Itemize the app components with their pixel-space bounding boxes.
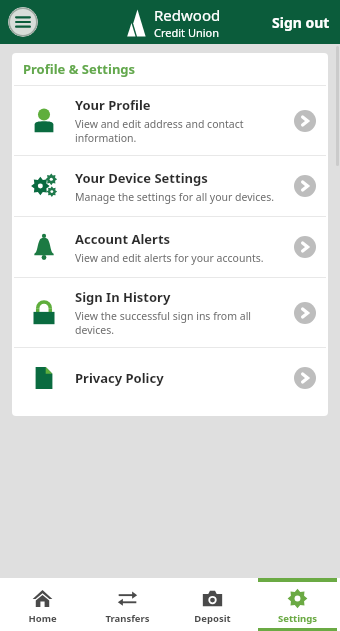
- button[interactable]: Sign In History: [12, 278, 328, 347]
- staticText: View and edit address and contact inform…: [75, 117, 284, 145]
- button[interactable]: Deposit: [170, 578, 255, 631]
- button[interactable]: Transfers: [85, 578, 170, 631]
- staticText: Profile & Settings: [23, 60, 136, 78]
- staticText: Sign out: [272, 13, 330, 32]
- staticText: View the successful sign ins from all de…: [75, 309, 284, 337]
- staticText: Deposit: [194, 612, 231, 625]
- button[interactable]: Your Profile: [12, 86, 328, 155]
- button[interactable]: Your Device Settings: [12, 156, 328, 216]
- staticText: Privacy Policy: [75, 369, 164, 387]
- staticText: Your Profile: [75, 96, 151, 114]
- staticText: Transfers: [105, 612, 150, 625]
- button[interactable]: Account Alerts: [12, 217, 328, 277]
- staticText: Account Alerts: [75, 230, 171, 248]
- staticText: Settings: [278, 612, 317, 625]
- button[interactable]: Settings: [255, 578, 340, 631]
- button[interactable]: Home: [0, 578, 85, 631]
- staticText: Credit Union: [154, 25, 220, 40]
- button[interactable]: Sign out: [262, 7, 340, 38]
- staticText: View and edit alerts for your accounts.: [75, 251, 264, 265]
- staticText: Redwood: [154, 5, 221, 25]
- staticText: Your Device Settings: [75, 169, 208, 187]
- button[interactable]: Privacy Policy: [12, 348, 328, 408]
- staticText: Home: [28, 612, 57, 625]
- button[interactable]: Open navigation menu: [8, 7, 38, 37]
- staticText: Manage the settings for all your devices…: [75, 190, 275, 204]
- staticText: Sign In History: [75, 288, 171, 306]
